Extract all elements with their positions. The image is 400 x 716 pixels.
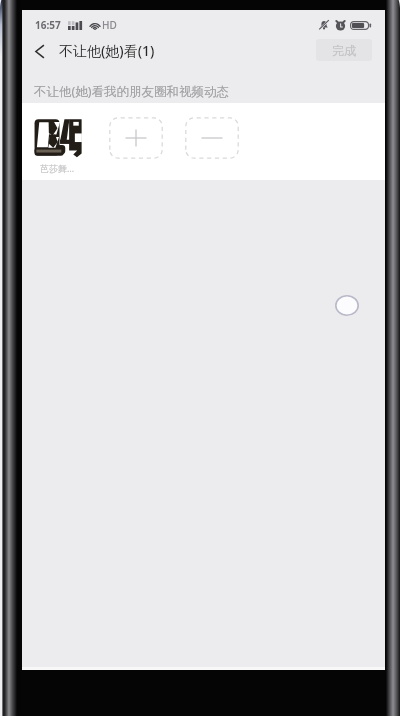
button[interactable]: Add member — [109, 117, 163, 159]
button[interactable]: 完成 — [316, 39, 372, 61]
button[interactable]: Back — [23, 36, 56, 66]
button[interactable]: Contact 芭莎舞 — [33, 116, 85, 158]
button[interactable]: Remove member — [185, 117, 239, 159]
staticText: 16:57 — [35, 18, 61, 32]
staticText: 芭莎舞… — [40, 162, 75, 174]
staticText: 完成 — [332, 43, 356, 58]
staticText: HD — [102, 18, 117, 32]
button[interactable]: Floating shortcut — [335, 295, 359, 316]
staticText: 不让他(她)看(1) — [59, 41, 155, 60]
staticText: 不让他(她)看我的朋友圈和视频动态 — [34, 83, 230, 100]
